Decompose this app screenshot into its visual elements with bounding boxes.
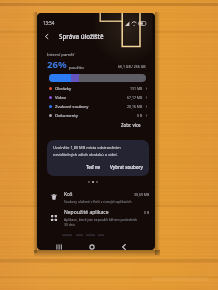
button[interactable]: Recent apps — [53, 242, 65, 250]
staticText: Zobr. více — [121, 122, 141, 128]
staticText: Zvukové soubory — [55, 104, 89, 110]
button[interactable]: Back — [118, 242, 130, 250]
staticText: 67,17 MB — [127, 95, 143, 100]
staticText: 20,16 MB — [127, 104, 143, 109]
staticText: 13:54 — [43, 20, 55, 26]
button[interactable]: Uvolněte 1,80 MB místa odstraněním — [47, 140, 149, 176]
button[interactable]: Zvukové soubory — [49, 102, 148, 111]
staticText: použito — [69, 65, 84, 71]
button[interactable]: Dokumenty — [49, 111, 148, 120]
staticText: Dokumenty — [55, 113, 78, 119]
staticText: 30 dnů — [64, 222, 75, 226]
button[interactable]: Video — [49, 93, 148, 102]
staticText: Správa úložiště — [59, 32, 104, 40]
button[interactable]: Back — [41, 31, 51, 41]
staticText: Aplikace, které jste nepoužili během pos… — [64, 217, 138, 221]
staticText: Vybrat soubory — [110, 164, 143, 170]
staticText: 66,1 GB / 256 GB — [118, 64, 146, 69]
staticText: Nepoužité aplikace — [64, 209, 109, 216]
button[interactable]: Nepoužité aplikace — [48, 207, 150, 228]
button[interactable]: Zobr. více — [119, 121, 143, 129]
button[interactable]: Home — [86, 242, 98, 250]
staticText: neviditelných záloh obrázků a videí. — [53, 152, 118, 157]
staticText: Uvolněte 1,80 MB místa odstraněním — [53, 145, 121, 150]
button[interactable]: Teď ne — [84, 163, 103, 171]
staticText: 26% — [47, 58, 67, 71]
button[interactable]: Vybrat soubory — [108, 163, 145, 171]
button[interactable]: Obrázky — [49, 84, 148, 93]
staticText: 0 B — [144, 210, 150, 215]
staticText: Teď ne — [86, 164, 101, 170]
staticText: Video — [55, 95, 67, 101]
staticText: Koš — [64, 191, 73, 198]
staticText: Interní paměť — [47, 52, 75, 58]
staticText: 131 MB — [130, 86, 143, 91]
staticText: 0 B — [137, 113, 143, 118]
staticText: 30,69 MB — [134, 192, 150, 197]
staticText: Obrázky — [55, 86, 72, 92]
button[interactable]: Koš — [48, 188, 150, 206]
staticText: Soubory uložené v Koši v různých aplikac… — [64, 199, 132, 203]
